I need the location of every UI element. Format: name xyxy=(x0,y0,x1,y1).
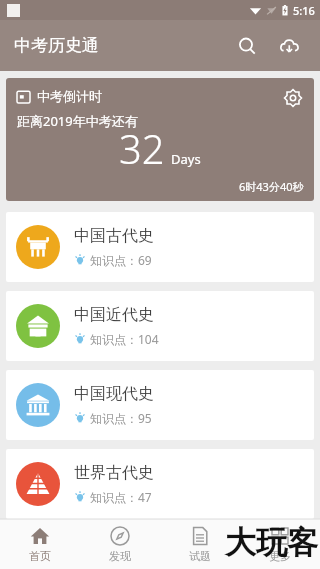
button[interactable]: Cloud download xyxy=(272,29,306,63)
staticText: 更多 xyxy=(269,549,291,563)
staticText: 世界古代史 xyxy=(74,463,154,483)
staticText: 32 xyxy=(119,121,165,175)
staticText: Days xyxy=(171,150,201,168)
staticText: 知识点：95 xyxy=(90,410,152,426)
staticText: 6时43分40秒 xyxy=(239,179,304,194)
button[interactable]: 中国现代史 xyxy=(6,370,314,440)
button[interactable]: Settings xyxy=(278,83,308,113)
button[interactable]: 首页 xyxy=(0,519,80,569)
staticText: 中考倒计时 xyxy=(37,88,102,104)
button[interactable]: 世界古代史 xyxy=(6,449,314,519)
staticText: 5:16 xyxy=(293,3,315,18)
staticText: 知识点：104 xyxy=(90,331,159,347)
button[interactable]: 更多 xyxy=(240,519,320,569)
staticText: 发现 xyxy=(109,549,131,563)
button[interactable]: 中国古代史 xyxy=(6,212,314,282)
staticText: 中国现代史 xyxy=(74,384,154,404)
button[interactable]: 中考倒计时 xyxy=(6,78,314,201)
staticText: 知识点：47 xyxy=(90,489,152,505)
staticText: 距离2019年中考还有 xyxy=(17,112,138,130)
staticText: 中国古代史 xyxy=(74,226,154,246)
button[interactable]: 发现 xyxy=(80,519,160,569)
button[interactable]: 中国近代史 xyxy=(6,291,314,361)
staticText: 中考历史通 xyxy=(14,35,99,56)
button[interactable]: Search xyxy=(230,29,264,63)
staticText: 试题 xyxy=(189,549,211,563)
button[interactable]: 试题 xyxy=(160,519,240,569)
staticText: 中国近代史 xyxy=(74,305,154,325)
staticText: 知识点：69 xyxy=(90,252,152,268)
staticText: 大玩客 xyxy=(225,523,318,562)
staticText: 首页 xyxy=(29,549,51,563)
